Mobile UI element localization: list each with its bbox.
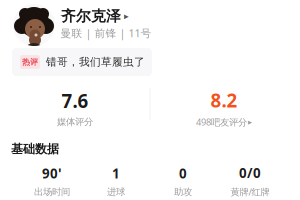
staticText: 曼联 | 前锋 | 11号	[60, 26, 151, 40]
staticText: 热评	[22, 57, 38, 67]
staticText: 助攻	[174, 186, 192, 198]
button[interactable]: 热评	[12, 48, 152, 76]
staticText: 进球	[107, 186, 125, 198]
staticText: 0	[179, 164, 187, 182]
staticText: 0/0	[239, 164, 261, 182]
staticText: 错哥，我们草履虫了	[46, 55, 145, 68]
staticText: 出场时间	[34, 186, 70, 198]
staticText: 1	[112, 164, 120, 182]
staticText: 90'	[42, 164, 62, 182]
staticText: 8.2	[210, 88, 237, 113]
staticText: 7.6	[61, 88, 88, 113]
staticText: 498吧友评分	[196, 116, 247, 128]
staticText: 基础数据	[11, 142, 59, 156]
button[interactable]: 8.2	[196, 88, 252, 128]
staticText: 黄牌/红牌	[230, 186, 269, 198]
staticText: 媒体评分	[57, 116, 93, 128]
button[interactable]: 齐尔克泽	[61, 7, 129, 25]
staticText: 齐尔克泽	[61, 7, 121, 25]
staticText: ▸	[124, 11, 129, 21]
staticText: ▸	[248, 117, 252, 126]
